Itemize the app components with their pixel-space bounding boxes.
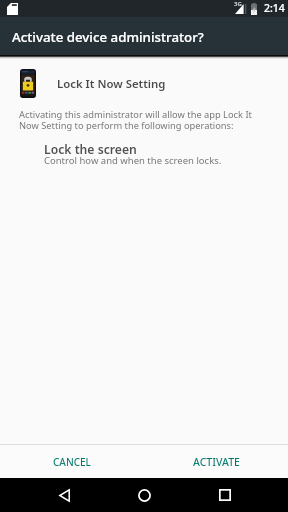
staticText: Activating this administrator will allow…: [19, 108, 255, 131]
staticText: Control how and when the screen locks.: [44, 154, 222, 167]
staticText: Activate device administrator?: [12, 28, 204, 46]
button[interactable]: ACTIVATE: [144, 445, 288, 478]
staticText: 3G: [234, 0, 242, 8]
staticText: 2:14: [264, 1, 285, 15]
button[interactable]: Recent apps: [201, 478, 249, 512]
staticText: CANCEL: [53, 455, 91, 469]
staticText: Lock It Now Setting: [57, 76, 166, 92]
button[interactable]: Back: [40, 478, 88, 512]
staticText: ACTIVATE: [193, 455, 240, 469]
button[interactable]: Home: [120, 478, 168, 512]
button[interactable]: CANCEL: [0, 445, 144, 478]
staticText: Lock the screen: [44, 141, 137, 158]
